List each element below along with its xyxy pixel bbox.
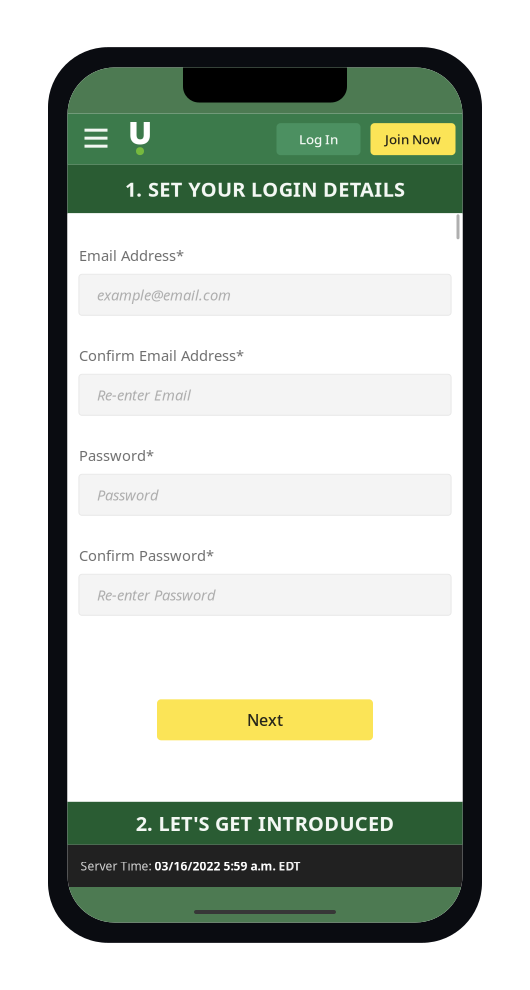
button[interactable]: Join Now <box>370 123 455 155</box>
staticText: U <box>128 111 152 153</box>
staticText: Server Time: <box>80 858 154 874</box>
button[interactable]: Home <box>129 123 153 156</box>
staticText: EDT <box>275 858 300 874</box>
staticText: Next <box>247 709 283 730</box>
staticText: Re-enter Password <box>97 585 215 605</box>
button[interactable]: Menu <box>78 120 113 159</box>
button[interactable]: Re-enter Password <box>79 574 451 615</box>
staticText: Log In <box>299 130 338 148</box>
button[interactable]: Next <box>157 699 373 740</box>
staticText: 1. SET YOUR LOGIN DETAILS <box>125 176 405 202</box>
staticText: 2. LET'S GET INTRODUCED <box>136 810 394 837</box>
button[interactable]: Log In <box>276 123 360 155</box>
staticText: Email Address* <box>79 246 184 265</box>
staticText: 03/16/2022 5:59 a.m. <box>154 858 275 874</box>
staticText: Confirm Password* <box>79 546 214 565</box>
staticText: Password* <box>79 446 154 465</box>
staticText: Password <box>97 485 158 505</box>
staticText: Join Now <box>385 130 441 148</box>
button[interactable]: Re-enter Email <box>79 374 451 415</box>
staticText: Re-enter Email <box>97 385 191 405</box>
button[interactable]: example@email.com <box>79 274 451 315</box>
staticText: example@email.com <box>97 285 231 305</box>
button[interactable]: Password <box>79 474 451 515</box>
staticText: Confirm Email Address* <box>79 346 244 365</box>
